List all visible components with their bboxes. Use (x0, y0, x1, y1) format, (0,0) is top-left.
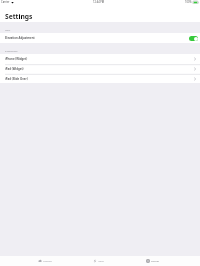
button[interactable]: Elevation Adjustment (0, 33, 200, 43)
button[interactable]: Toggle Elevation Adjustment (189, 36, 198, 41)
staticText: Forecast (43, 260, 52, 263)
staticText: 100% (185, 0, 192, 4)
button[interactable]: Settings (145, 259, 160, 263)
staticText: Carrier (1, 0, 10, 4)
staticText: INSTRUCTIONS (5, 50, 18, 52)
button[interactable]: iPhone (Widget) (0, 54, 200, 64)
staticText: iPad (Slide Over) (5, 77, 28, 81)
staticText: Elevation Adjustment (5, 36, 35, 40)
staticText: Settings (5, 12, 33, 21)
staticText: Settings (151, 260, 159, 263)
staticText: Alerts (98, 260, 104, 263)
button[interactable]: iPad (Slide Over) (0, 74, 200, 83)
staticText: UNITS (5, 29, 11, 31)
staticText: iPad (Widget) (5, 67, 24, 71)
button[interactable]: iPad (Widget) (0, 64, 200, 74)
staticText: iPhone (Widget) (5, 57, 28, 61)
button[interactable]: Forecast (37, 259, 53, 263)
staticText: 12:44 PM (93, 0, 105, 4)
button[interactable]: Alerts (92, 259, 105, 263)
